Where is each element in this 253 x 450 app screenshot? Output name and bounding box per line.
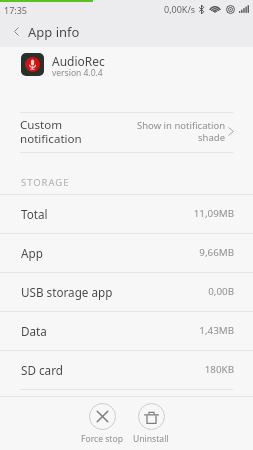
staticText: Force stop (81, 433, 123, 445)
button[interactable]: Force stop (79, 403, 125, 445)
button[interactable]: AudioRec (0, 47, 253, 112)
staticText: Data (21, 323, 47, 339)
staticText: 0,00B (0, 285, 234, 298)
staticText: 9,66MB (0, 246, 234, 259)
staticText: USB storage app (21, 284, 113, 300)
staticText: Uninstall (133, 433, 169, 445)
button[interactable]: Uninstall (128, 403, 174, 445)
staticText: Show in notification shade (108, 119, 225, 144)
staticText: SD card (21, 362, 63, 378)
staticText: Total (21, 206, 48, 222)
button[interactable]: USB storage app (0, 272, 253, 311)
button[interactable]: SD card (0, 350, 253, 389)
staticText: 17:35 (4, 4, 28, 16)
button[interactable]: Custom notification (0, 112, 253, 152)
staticText: AudioRec (52, 53, 105, 69)
staticText: App (21, 245, 43, 261)
button[interactable]: App (0, 233, 253, 272)
button[interactable]: Back (1, 16, 31, 46)
staticText: version 4.0.4 (52, 67, 103, 79)
button[interactable]: Data (0, 311, 253, 350)
staticText: 0,00K/s (164, 3, 196, 15)
staticText: 180KB (0, 363, 234, 376)
staticText: STORAGE (21, 176, 70, 189)
staticText: Custom notification (20, 117, 82, 146)
button[interactable]: Total (0, 194, 253, 233)
staticText: 11,09MB (0, 207, 234, 220)
staticText: 1,43MB (0, 324, 234, 337)
staticText: App info (28, 23, 80, 41)
